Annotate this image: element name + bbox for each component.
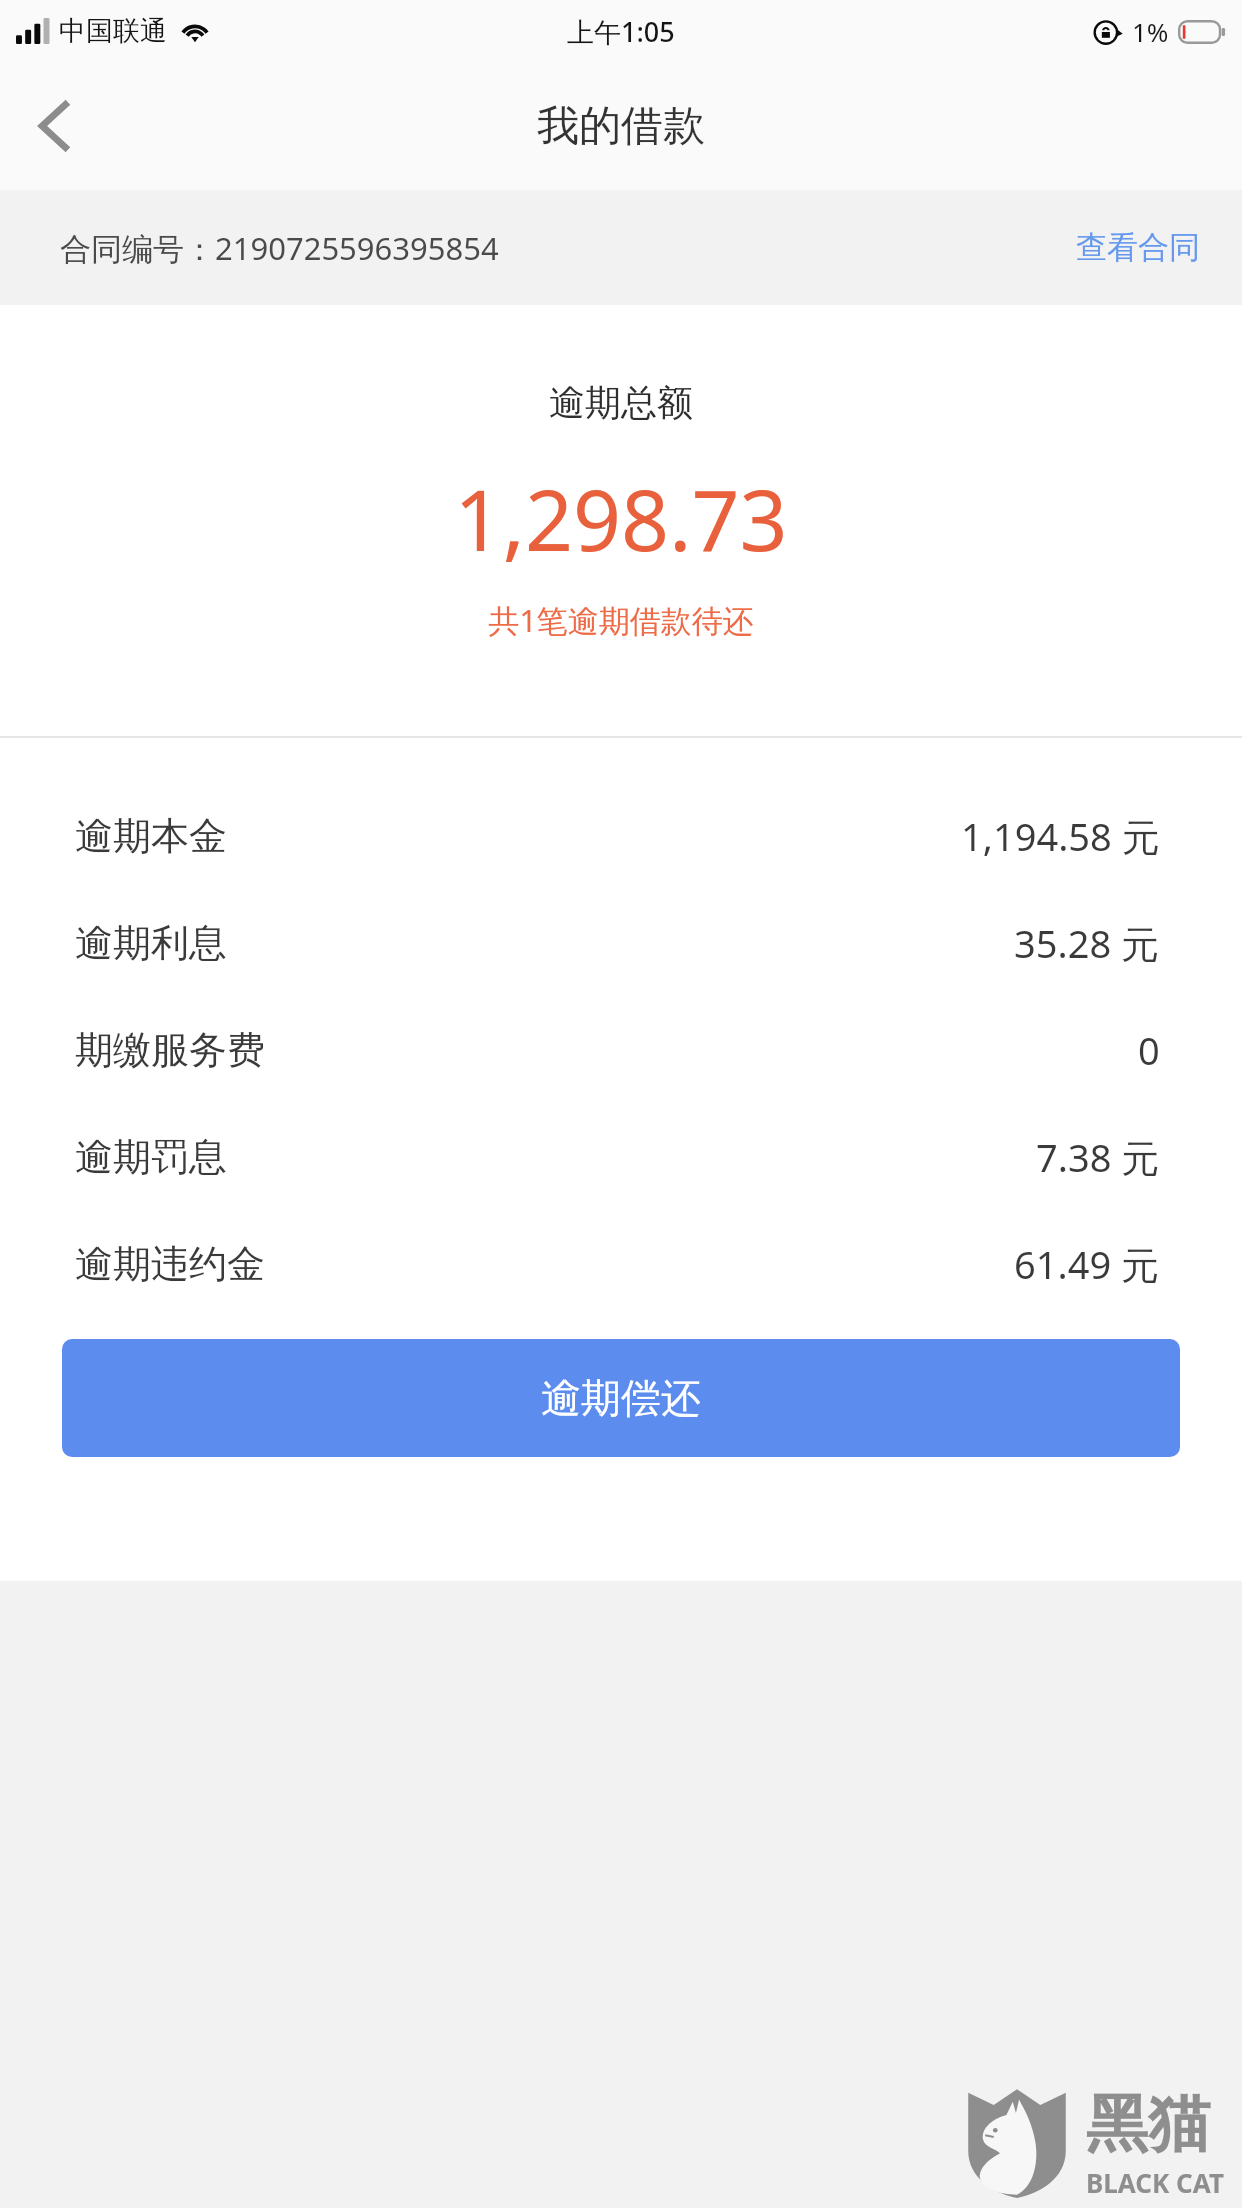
staticText: 1,194.58 元 — [961, 810, 1160, 862]
staticText: 合同编号：2190725596395854 — [60, 227, 499, 269]
staticText: 上午1:05 — [567, 13, 675, 50]
staticText: 1% — [1132, 14, 1169, 49]
staticText: 共1笔逾期借款待还 — [488, 599, 754, 641]
staticText: 逾期偿还 — [541, 1373, 701, 1423]
button[interactable]: 逾期罚息 — [0, 1103, 1242, 1210]
button[interactable]: 逾期偿还 — [62, 1339, 1180, 1457]
staticText: 7.38 元 — [1036, 1131, 1160, 1183]
staticText: 逾期总额 — [549, 380, 693, 425]
button[interactable]: 查看合同 — [1070, 220, 1206, 275]
button[interactable]: 逾期利息 — [0, 889, 1242, 996]
staticText: 中国联通 — [59, 14, 167, 48]
button[interactable]: 逾期本金 — [0, 782, 1242, 889]
staticText: 1,298.73 — [454, 461, 788, 575]
staticText: 逾期违约金 — [75, 1240, 265, 1288]
button[interactable]: 逾期违约金 — [0, 1210, 1242, 1317]
staticText: 逾期利息 — [75, 919, 227, 967]
staticText: 我的借款 — [537, 100, 705, 153]
staticText: 逾期罚息 — [75, 1133, 227, 1181]
staticText: 黑猫 — [1086, 2085, 1210, 2163]
staticText: 35.28 元 — [1014, 917, 1160, 969]
staticText: 61.49 元 — [1014, 1238, 1160, 1290]
staticText: 0 — [1138, 1024, 1160, 1076]
staticText: 逾期本金 — [75, 812, 227, 860]
staticText: 查看合同 — [1076, 228, 1200, 267]
button[interactable]: 期缴服务费 — [0, 996, 1242, 1103]
staticText: BLACK CAT — [1086, 2165, 1224, 2200]
button[interactable]: 返回 — [0, 71, 110, 181]
staticText: 期缴服务费 — [75, 1026, 265, 1074]
